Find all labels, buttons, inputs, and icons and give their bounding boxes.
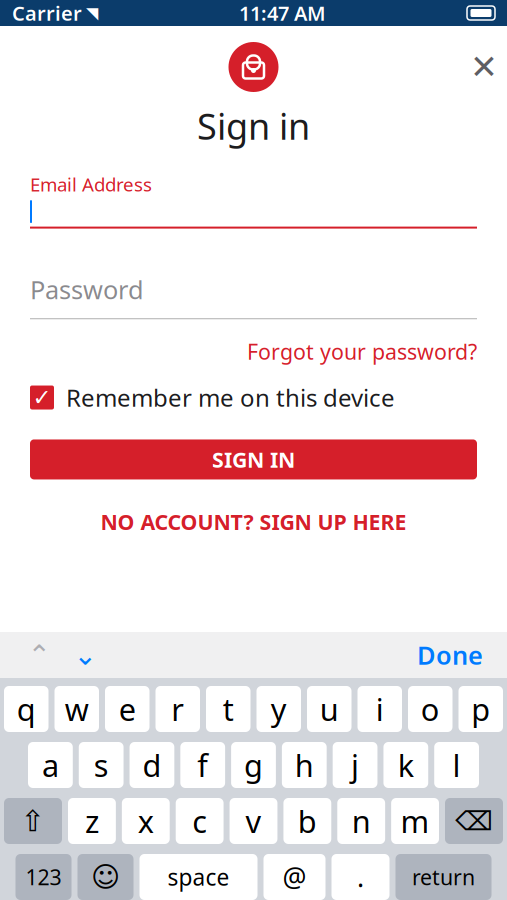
button[interactable]: s bbox=[79, 742, 124, 788]
staticText: v bbox=[245, 801, 261, 841]
staticText: Remember me on this device bbox=[66, 382, 395, 413]
button[interactable]: Next field bbox=[62, 636, 108, 674]
button[interactable]: n bbox=[337, 798, 385, 844]
staticText: p bbox=[471, 689, 490, 729]
staticText: t bbox=[223, 689, 234, 729]
staticText: o bbox=[421, 689, 440, 729]
staticText: f bbox=[197, 745, 208, 785]
button[interactable]: i bbox=[357, 686, 402, 732]
button[interactable]: f bbox=[180, 742, 225, 788]
button[interactable]: q bbox=[4, 686, 48, 732]
button[interactable]: Period bbox=[331, 854, 389, 900]
button[interactable]: Emoji bbox=[77, 854, 133, 900]
button[interactable]: y bbox=[256, 686, 301, 732]
button[interactable]: l bbox=[434, 742, 479, 788]
staticText: w bbox=[65, 689, 89, 729]
staticText: q bbox=[17, 689, 36, 729]
staticText: Password bbox=[30, 273, 144, 306]
button[interactable]: At sign bbox=[263, 854, 325, 900]
staticText: j bbox=[351, 745, 359, 785]
staticText: z bbox=[85, 801, 99, 841]
staticText: Forgot your password? bbox=[247, 337, 477, 365]
staticText: n bbox=[352, 801, 371, 841]
button[interactable]: o bbox=[408, 686, 452, 732]
button[interactable]: Space bbox=[139, 854, 257, 900]
staticText: u bbox=[320, 689, 339, 729]
staticText: ⇧ bbox=[20, 804, 45, 838]
button[interactable]: g bbox=[231, 742, 276, 788]
staticText: g bbox=[244, 745, 263, 785]
staticText: ⌄ bbox=[73, 639, 96, 671]
button[interactable]: Done bbox=[409, 636, 491, 674]
staticText: ◥ bbox=[86, 4, 98, 22]
staticText: ☺ bbox=[91, 861, 120, 893]
button[interactable]: Close bbox=[461, 44, 507, 90]
button[interactable]: k bbox=[383, 742, 428, 788]
button[interactable]: t bbox=[206, 686, 250, 732]
button[interactable]: w bbox=[54, 686, 99, 732]
staticText: i bbox=[376, 689, 384, 729]
staticText: m bbox=[401, 801, 430, 841]
button[interactable]: v bbox=[230, 798, 277, 844]
button[interactable]: z bbox=[68, 798, 116, 844]
button[interactable]: NO ACCOUNT? SIGN UP HERE bbox=[70, 479, 436, 536]
button[interactable]: c bbox=[176, 798, 224, 844]
button[interactable]: r bbox=[155, 686, 200, 732]
staticText: ✕ bbox=[470, 48, 498, 86]
staticText: k bbox=[398, 745, 414, 785]
button[interactable]: j bbox=[333, 742, 377, 788]
staticText: return bbox=[412, 863, 475, 891]
button[interactable]: Return bbox=[395, 854, 491, 900]
button[interactable]: e bbox=[105, 686, 149, 732]
staticText: d bbox=[142, 745, 161, 785]
button[interactable]: h bbox=[282, 742, 327, 788]
button[interactable]: Shift bbox=[4, 798, 62, 844]
button[interactable]: SIGN IN bbox=[0, 413, 507, 479]
staticText: y bbox=[271, 689, 287, 729]
button[interactable]: p bbox=[458, 686, 503, 732]
button[interactable]: Delete bbox=[445, 798, 503, 844]
staticText: l bbox=[453, 745, 461, 785]
staticText: Done bbox=[417, 638, 483, 672]
button[interactable]: u bbox=[307, 686, 351, 732]
button[interactable]: m bbox=[391, 798, 439, 844]
staticText: NO ACCOUNT? SIGN UP HERE bbox=[100, 507, 406, 536]
staticText: Email Address bbox=[30, 172, 152, 197]
staticText: . bbox=[357, 859, 364, 895]
button[interactable]: ✓ bbox=[0, 366, 507, 413]
staticText: SIGN IN bbox=[212, 445, 295, 474]
staticText: r bbox=[171, 689, 184, 729]
staticText: s bbox=[94, 745, 109, 785]
staticText: e bbox=[119, 689, 136, 729]
button[interactable]: d bbox=[130, 742, 174, 788]
staticText: ⌃ bbox=[27, 639, 50, 671]
staticText: x bbox=[138, 801, 154, 841]
button[interactable]: Previous field bbox=[16, 636, 62, 674]
staticText: h bbox=[295, 745, 314, 785]
staticText: Carrier bbox=[12, 0, 82, 26]
staticText: b bbox=[298, 801, 317, 841]
button[interactable]: b bbox=[283, 798, 331, 844]
staticText: c bbox=[192, 801, 207, 841]
staticText: 11:47 AM bbox=[239, 0, 326, 26]
staticText: ✓ bbox=[32, 385, 51, 410]
staticText: ⌫ bbox=[455, 806, 493, 836]
staticText: 123 bbox=[25, 863, 61, 891]
staticText: a bbox=[42, 745, 59, 785]
staticText: @ bbox=[282, 859, 306, 895]
button[interactable]: Numbers bbox=[15, 854, 71, 900]
staticText: Sign in bbox=[197, 102, 310, 150]
button[interactable]: x bbox=[122, 798, 170, 844]
button[interactable]: a bbox=[28, 742, 73, 788]
button[interactable]: Forgot your password? bbox=[247, 337, 477, 365]
staticText: space bbox=[167, 862, 229, 892]
